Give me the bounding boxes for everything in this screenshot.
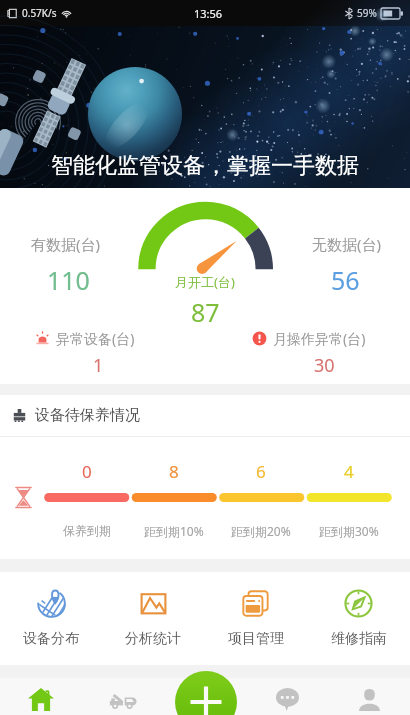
button[interactable]: Profile [328,678,410,715]
staticText: 保养到期 [63,523,111,538]
staticText: 设备待保养情况 [35,406,140,425]
staticText: 13:56 [194,6,223,21]
staticText: 距到期30% [319,523,379,539]
button[interactable]: Home [0,678,82,715]
button[interactable]: 分析统计 [102,572,204,665]
staticText: 30 [314,353,335,378]
staticText: 有数据(台) [31,234,101,254]
staticText: 1 [93,353,104,378]
staticText: 87 [191,295,220,329]
staticText: 59% [357,6,377,20]
button[interactable]: 设备分布 [0,572,102,665]
staticText: 距到期10% [144,523,204,539]
button[interactable]: Equipment [82,678,164,715]
staticText: 8 [169,460,179,483]
staticText: 4 [344,460,354,483]
button[interactable]: Add [175,671,237,715]
button[interactable]: 项目管理 [204,572,307,665]
staticText: 月开工(台) [175,273,235,291]
staticText: 距到期20% [231,523,291,539]
button[interactable]: 维修指南 [307,572,410,665]
button[interactable]: Messages [246,678,328,715]
staticText: 月操作异常(台) [273,329,366,348]
staticText: 异常设备(台) [56,329,135,348]
staticText: 项目管理 [228,630,284,648]
staticText: 56 [331,263,360,297]
staticText: 无数据(台) [312,234,382,254]
staticText: 智能化监管设备，掌握一手数据 [51,152,359,180]
staticText: 0.57K/s [22,6,57,20]
staticText: 6 [256,460,266,483]
staticText: 0 [82,460,92,483]
staticText: 维修指南 [331,630,387,648]
staticText: 设备分布 [23,630,79,648]
staticText: 110 [47,263,90,297]
staticText: 分析统计 [125,630,181,648]
